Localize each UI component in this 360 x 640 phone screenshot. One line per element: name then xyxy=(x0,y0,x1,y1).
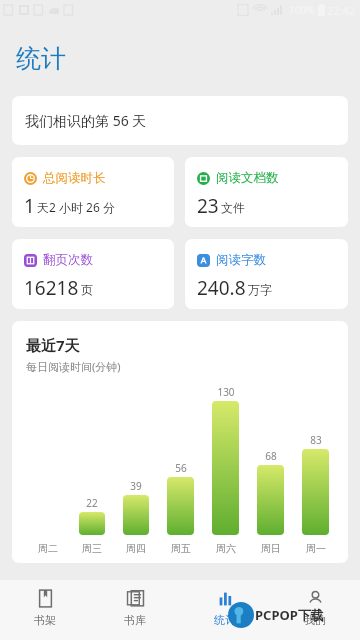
staticText: 39 xyxy=(130,479,142,493)
staticText: 万字 xyxy=(248,282,272,297)
staticText: 83 xyxy=(310,433,322,447)
staticText: 周一 xyxy=(306,542,326,555)
staticText: 天2 小时 26 分 xyxy=(37,199,115,215)
button[interactable]: 阅读文档数 xyxy=(185,157,348,227)
button[interactable]: 翻页次数 xyxy=(12,239,174,309)
staticText: 统计 xyxy=(16,43,66,74)
staticText: 周四 xyxy=(126,542,146,555)
staticText: 130 xyxy=(217,385,235,399)
staticText: 周六 xyxy=(216,542,236,555)
staticText: 68 xyxy=(265,449,277,463)
staticText: 我们相识的第 56 天 xyxy=(25,111,147,130)
staticText: 周三 xyxy=(82,542,102,555)
staticText: 23 xyxy=(197,193,219,217)
staticText: 周五 xyxy=(171,542,191,555)
staticText: 最近7天 xyxy=(26,335,80,355)
staticText: 周日 xyxy=(261,542,281,555)
button[interactable]: 我们相识的第 56 天 xyxy=(12,96,348,145)
staticText: 每日阅读时间(分钟) xyxy=(26,359,121,374)
staticText: 书架 xyxy=(34,613,56,627)
staticText: 1 xyxy=(24,193,35,217)
button[interactable]: 总阅读时长 xyxy=(12,157,174,227)
button[interactable]: 我的 xyxy=(270,580,360,627)
staticText: 240.8 xyxy=(197,275,246,299)
button[interactable]: 阅读字数 xyxy=(185,239,348,309)
staticText: 阅读字数 xyxy=(216,252,266,268)
staticText: 22 xyxy=(86,496,98,510)
button[interactable]: 书架 xyxy=(0,580,90,627)
staticText: 翻页次数 xyxy=(43,252,93,268)
staticText: 页 xyxy=(81,282,93,297)
button[interactable]: 书库 xyxy=(90,580,180,627)
button[interactable]: 统计 xyxy=(180,580,270,627)
staticText: 总阅读时长 xyxy=(43,170,106,186)
staticText: 书库 xyxy=(124,613,146,627)
staticText: 16218 xyxy=(24,275,79,299)
staticText: 统计 xyxy=(214,613,236,627)
staticText: 阅读文档数 xyxy=(216,170,279,186)
staticText: 文件 xyxy=(221,200,245,215)
staticText: PCPOP下载 xyxy=(255,606,324,624)
staticText: 我的 xyxy=(304,613,326,627)
staticText: 周二 xyxy=(38,542,58,555)
staticText: 56 xyxy=(175,461,187,475)
